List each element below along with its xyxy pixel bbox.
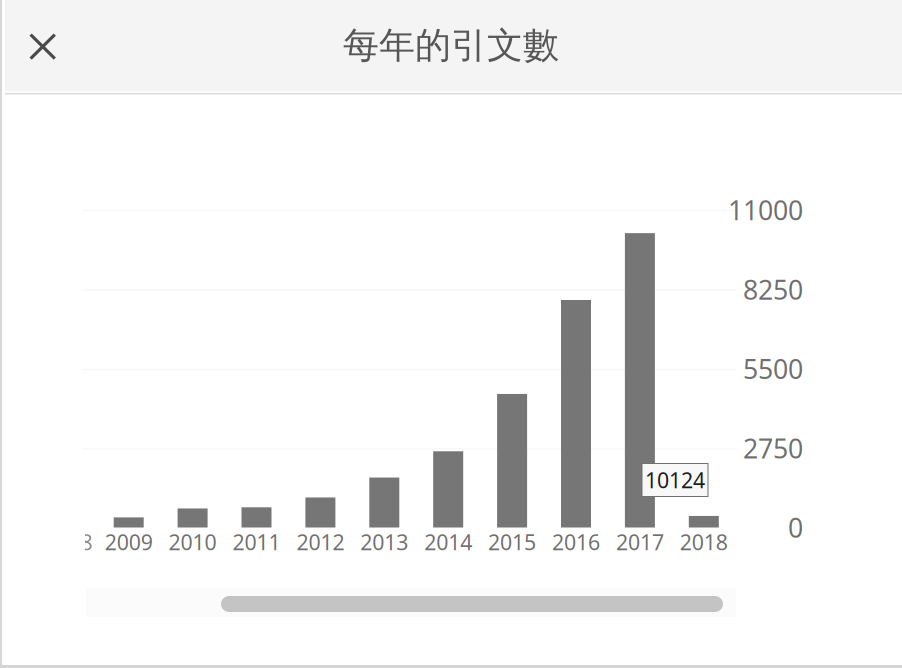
- staticText: 0: [788, 510, 803, 545]
- staticText: 8250: [743, 272, 803, 307]
- staticText: 2015: [488, 528, 536, 556]
- staticText: 2011: [232, 528, 280, 556]
- staticText: 2013: [360, 528, 408, 556]
- staticText: 2016: [552, 528, 600, 556]
- staticText: 2018: [680, 528, 728, 556]
- staticText: 2017: [616, 528, 664, 556]
- staticText: 10124: [645, 466, 705, 494]
- staticText: 2750: [743, 430, 803, 466]
- staticText: 2010: [169, 528, 217, 556]
- staticText: 2014: [424, 528, 472, 556]
- button[interactable]: Close: [14, 18, 71, 75]
- staticText: 每年的引文數: [343, 23, 559, 68]
- staticText: 5500: [743, 351, 803, 386]
- staticText: 2012: [296, 528, 344, 556]
- navigationBar: 每年的引文數: [0, 0, 902, 91]
- staticText: 8: [80, 528, 92, 556]
- staticText: 11000: [728, 192, 803, 228]
- staticText: 2009: [105, 528, 153, 556]
